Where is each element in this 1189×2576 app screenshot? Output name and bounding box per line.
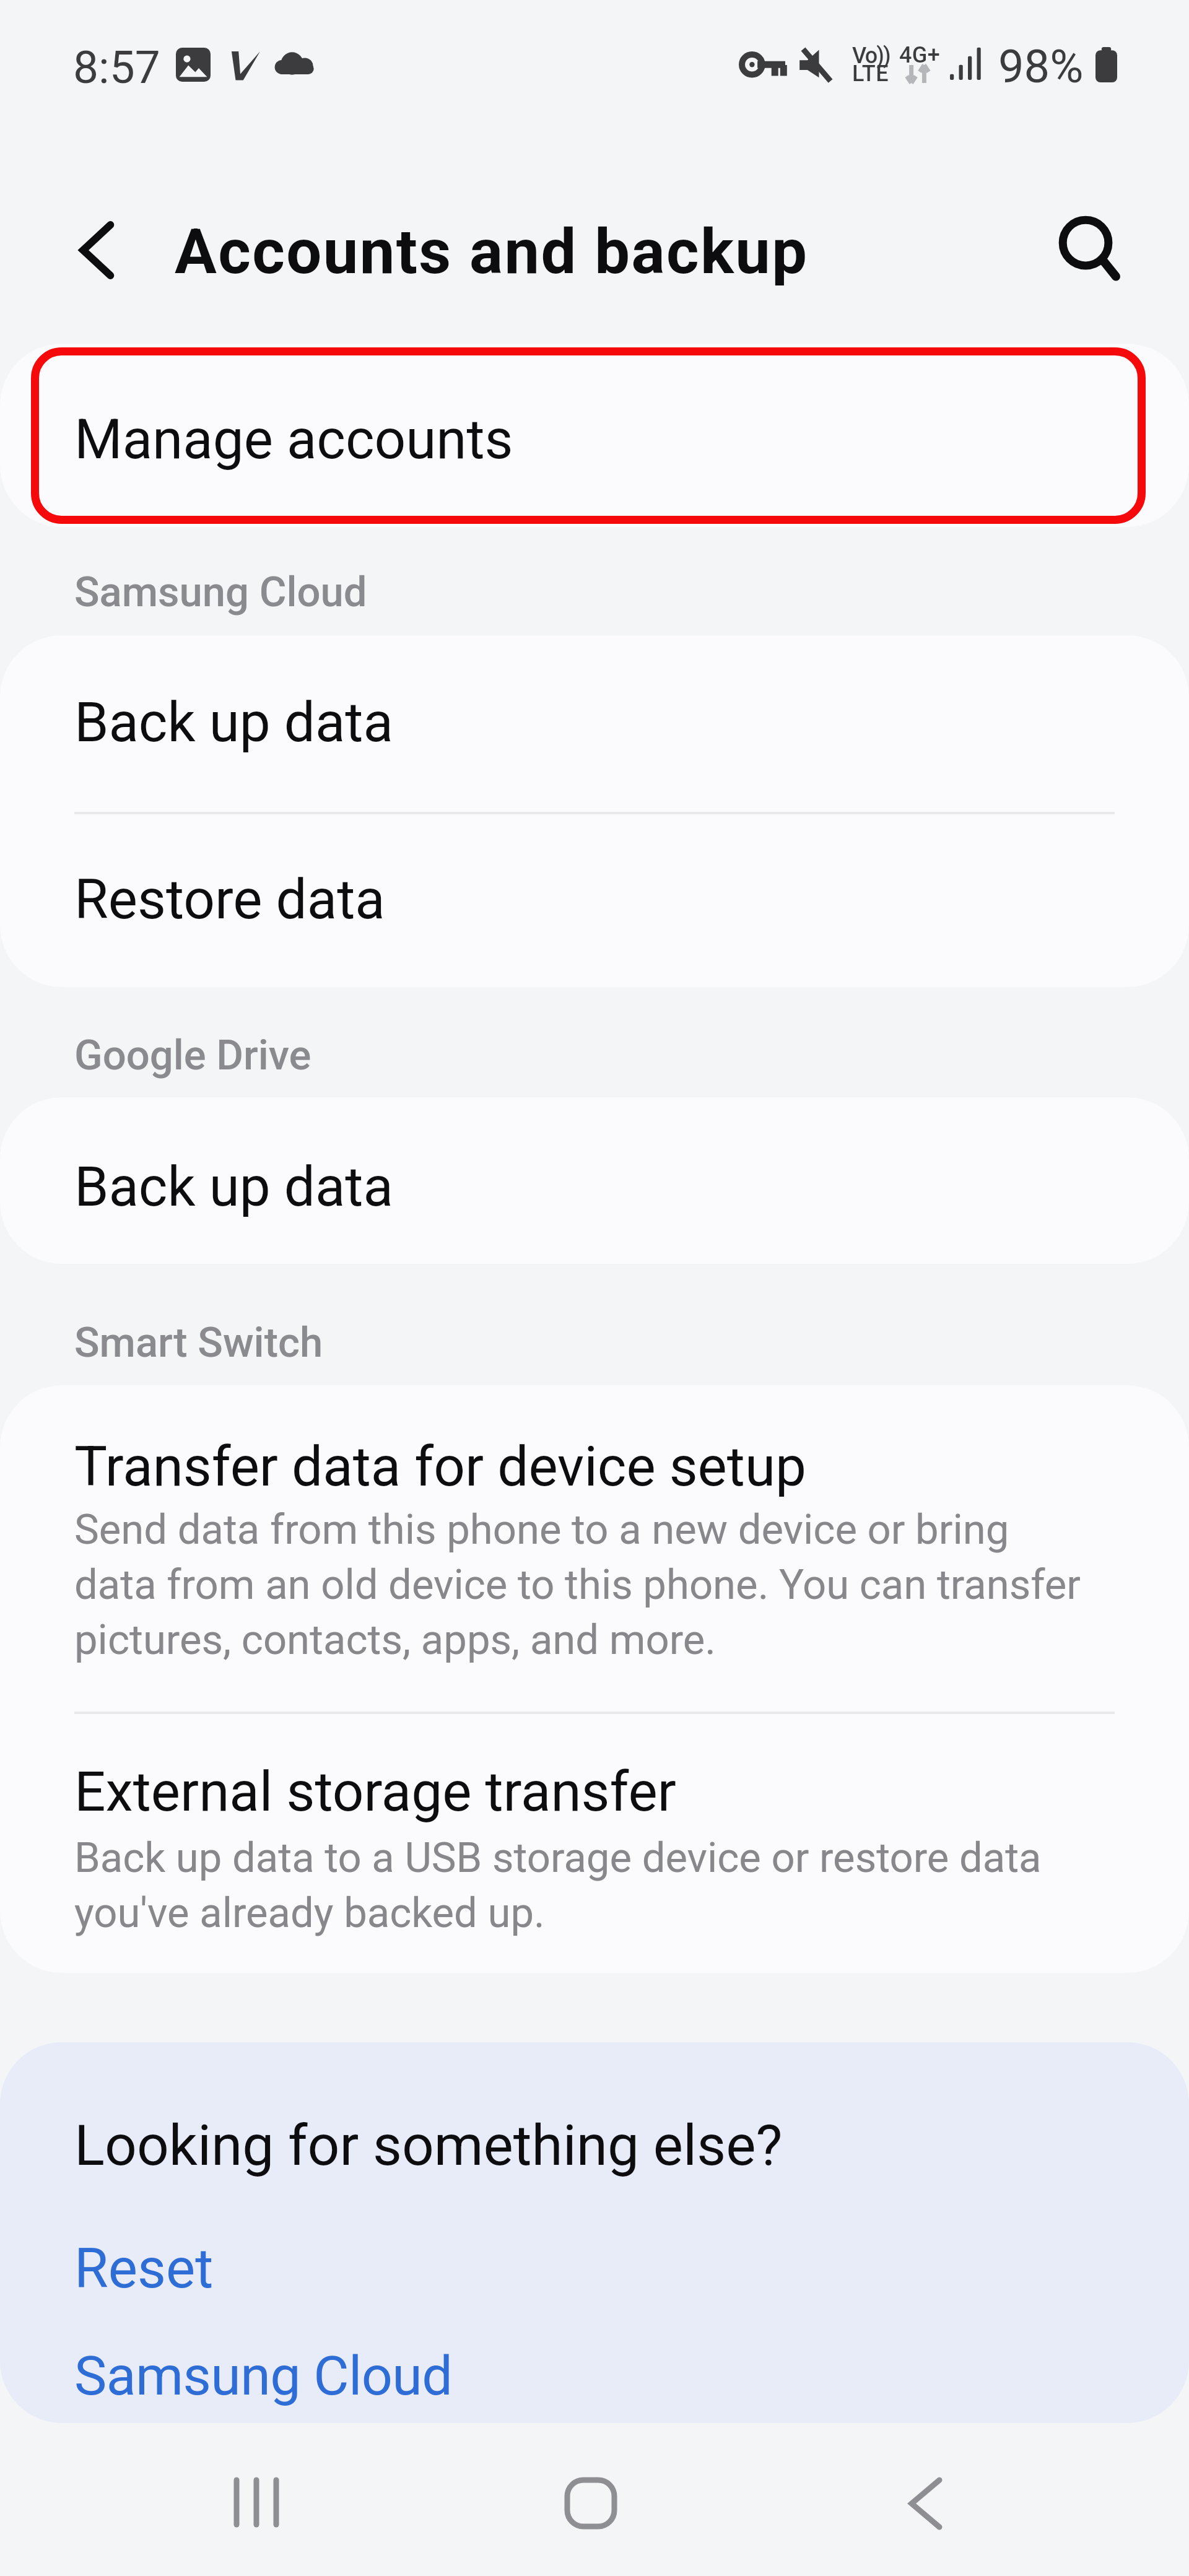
button[interactable]: Samsung Cloud xyxy=(0,2335,1189,2423)
staticText: 4G+ xyxy=(899,42,941,68)
staticText: Manage accounts xyxy=(74,407,513,471)
staticText: LTE xyxy=(852,61,889,87)
staticText: Back up data to a USB storage device or … xyxy=(74,1834,1042,1882)
button[interactable]: Home xyxy=(494,2451,686,2551)
staticText: 98% xyxy=(998,40,1084,94)
staticText: External storage transfer xyxy=(74,1759,676,1824)
staticText: Samsung Cloud xyxy=(74,568,367,617)
button[interactable]: Restore data xyxy=(0,812,1189,987)
button[interactable]: Back up data xyxy=(0,1097,1189,1264)
button[interactable]: Manage accounts xyxy=(0,344,1189,527)
button[interactable]: Reset xyxy=(0,2228,1189,2315)
button[interactable]: Transfer data for device setup xyxy=(0,1385,1189,1713)
staticText: Transfer data for device setup xyxy=(74,1434,806,1499)
staticText: you've already backed up. xyxy=(74,1889,545,1938)
button[interactable]: Back up data xyxy=(0,635,1189,812)
staticText: Vo)) xyxy=(852,43,890,69)
staticText: Smart Switch xyxy=(74,1318,323,1367)
staticText: Reset xyxy=(74,2236,214,2300)
button[interactable]: External storage transfer xyxy=(0,1713,1189,1973)
staticText: Restore data xyxy=(74,867,385,931)
staticText: Accounts and backup xyxy=(175,215,809,288)
button[interactable]: Search xyxy=(1061,219,1130,287)
button[interactable]: Back xyxy=(827,2451,1019,2551)
staticText: Send data from this phone to a new devic… xyxy=(74,1505,1009,1554)
staticText: Samsung Cloud xyxy=(74,2344,453,2408)
staticText: pictures, contacts, apps, and more. xyxy=(74,1616,716,1664)
staticText: data from an old device to this phone. Y… xyxy=(74,1560,1081,1609)
staticText: Back up data xyxy=(74,690,393,754)
staticText: Google Drive xyxy=(74,1031,311,1080)
staticText: Looking for something else? xyxy=(74,2113,783,2179)
staticText: Back up data xyxy=(74,1154,393,1219)
button[interactable]: Recents xyxy=(157,2451,349,2551)
button[interactable]: Navigate up xyxy=(62,209,134,291)
staticText: 8:57 xyxy=(73,41,160,94)
